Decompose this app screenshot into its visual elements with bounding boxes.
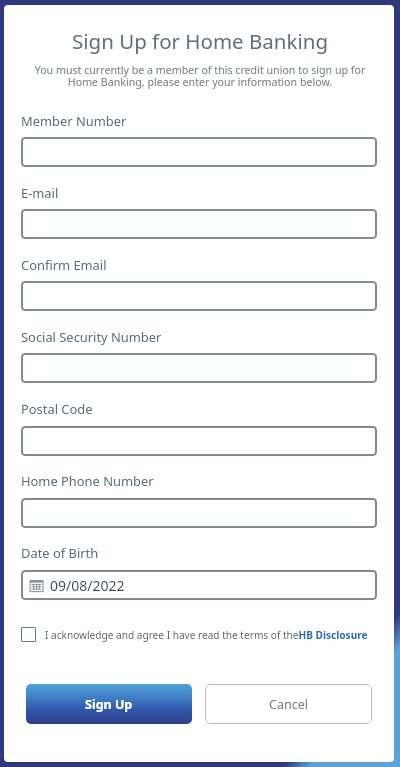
staticText: Sign Up for Home Banking [0, 27, 400, 55]
button[interactable] [21, 137, 377, 167]
other: Pick date [30, 579, 43, 592]
staticText: Cancel [269, 696, 308, 713]
button[interactable] [21, 353, 377, 383]
button[interactable]: Cancel [205, 684, 372, 724]
staticText: Date of Birth [21, 544, 99, 562]
staticText: Postal Code [21, 400, 93, 418]
staticText: Confirm Email [21, 256, 107, 274]
button[interactable]: Sign Up [26, 684, 192, 724]
button[interactable] [21, 498, 377, 528]
staticText: E-mail [21, 184, 59, 202]
staticText: Home Phone Number [21, 472, 154, 490]
button[interactable]: I acknowledge and agree I have read the … [21, 626, 368, 643]
staticText: Member Number [21, 112, 127, 130]
button[interactable] [21, 209, 377, 239]
staticText: Sign Up [85, 696, 133, 713]
button[interactable] [21, 281, 377, 311]
button[interactable] [21, 426, 377, 456]
staticText: Social Security Number [21, 328, 162, 346]
staticText: I acknowledge and agree I have read the … [45, 628, 368, 642]
staticText: 09/08/2022 [50, 576, 125, 595]
staticText: You must currently be a member of this c… [31, 63, 369, 90]
button[interactable]: Pick date [21, 570, 377, 600]
